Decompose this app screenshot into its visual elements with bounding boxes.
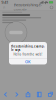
button[interactable]: Back [0,89,11,100]
staticText: Hello from the web! [13,53,42,56]
staticText: aA [3,6,6,9]
button[interactable]: Bookmarks [34,89,45,100]
button[interactable]: Forward [11,89,22,100]
staticText: 9:41 [1,0,8,5]
staticText: theastonishing.example says [11,45,45,52]
staticText: theastonishing.example [14,2,42,13]
staticText: OK [25,59,31,64]
button[interactable]: OK [9,59,47,64]
button[interactable]: Tabs [45,89,56,100]
button[interactable]: Share [22,89,34,100]
